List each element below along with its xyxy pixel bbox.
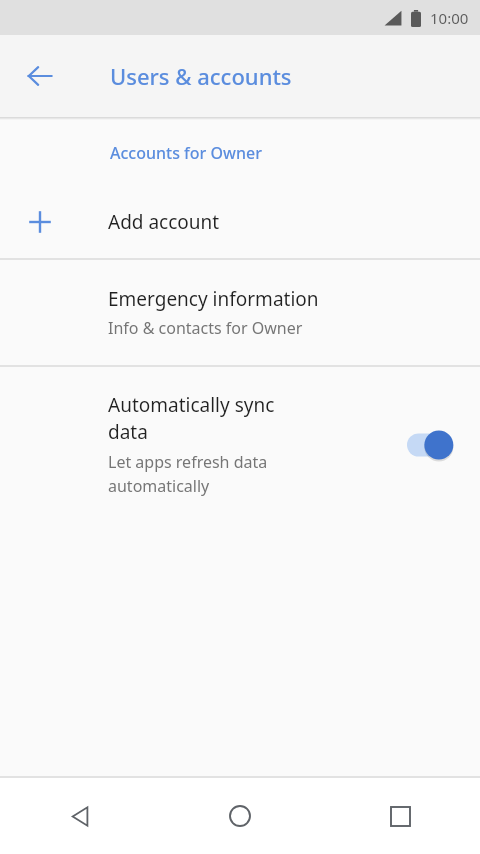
staticText: Add account: [108, 209, 220, 235]
staticText: Automatically sync data: [108, 392, 275, 445]
button[interactable]: Emergency information: [0, 260, 480, 365]
staticText: Emergency information: [108, 286, 319, 312]
staticText: Accounts for Owner: [110, 142, 262, 164]
button[interactable]: Recent apps: [320, 778, 480, 854]
staticText: 10:00: [430, 8, 469, 28]
button[interactable]: Back: [0, 778, 160, 854]
button[interactable]: Home: [160, 778, 320, 854]
button[interactable]: Add account: [0, 186, 480, 258]
button[interactable]: Back: [14, 50, 66, 102]
button[interactable]: Automatically sync data: [398, 423, 458, 467]
staticText: Info & contacts for Owner: [108, 317, 303, 339]
button[interactable]: Automatically sync data: [0, 367, 480, 522]
staticText: Let apps refresh data automatically: [108, 451, 268, 497]
staticText: Users & accounts: [110, 61, 292, 91]
